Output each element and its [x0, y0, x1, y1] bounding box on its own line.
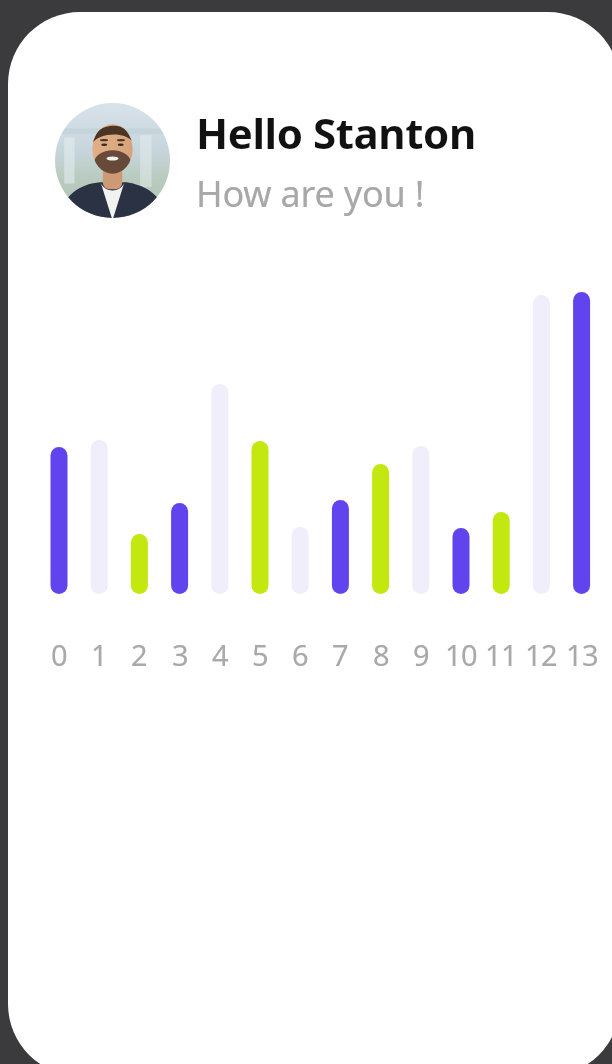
- staticText: 1: [75, 635, 123, 1064]
- staticText: 8: [357, 635, 405, 1064]
- staticText: 10: [437, 635, 485, 1064]
- staticText: 2: [115, 635, 163, 1064]
- staticText: How are you !: [196, 169, 425, 218]
- staticText: 3: [156, 635, 204, 1064]
- other: Activity bar chart: [0, 270, 612, 1064]
- button[interactable]: Profile photo: [55, 103, 476, 218]
- staticText: 4: [196, 635, 244, 1064]
- staticText: 11: [477, 635, 525, 1064]
- staticText: 0: [35, 635, 83, 1064]
- staticText: 9: [397, 635, 445, 1064]
- staticText: 5: [236, 635, 284, 1064]
- staticText: 13: [558, 635, 606, 1064]
- staticText: 7: [316, 635, 364, 1064]
- button[interactable]: Profile photo: [55, 103, 170, 218]
- staticText: 12: [517, 635, 565, 1064]
- staticText: 6: [276, 635, 324, 1064]
- staticText: Hello Stanton: [196, 104, 476, 161]
